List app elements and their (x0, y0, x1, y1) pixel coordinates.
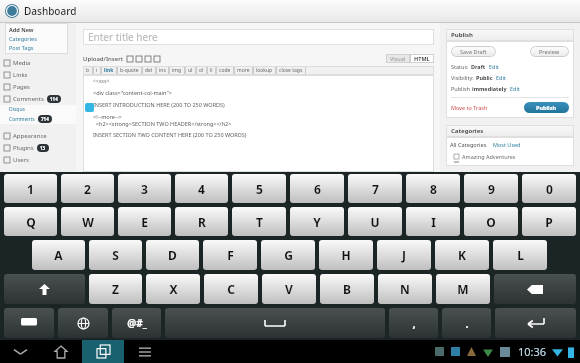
button[interactable]: Edit (510, 85, 520, 92)
button[interactable]: Menu (124, 340, 166, 363)
button[interactable]: Comments (0, 93, 76, 105)
button[interactable]: HTML (410, 54, 434, 63)
button[interactable]: Disqus (9, 105, 25, 114)
button[interactable]: Edit (489, 63, 499, 70)
staticText: 8 (430, 181, 437, 197)
button[interactable]: T (232, 207, 286, 236)
button[interactable]: li (207, 66, 216, 75)
button[interactable]: R (175, 207, 228, 236)
button[interactable]: 5 (232, 174, 286, 203)
button[interactable]: H (319, 240, 373, 270)
button[interactable]: 3 (118, 174, 171, 203)
button[interactable]: 7 (348, 174, 402, 203)
button[interactable]: Q (4, 207, 57, 236)
button[interactable]: Insert media (127, 56, 133, 62)
button[interactable]: B (320, 274, 374, 304)
button[interactable]: M (436, 274, 490, 304)
button[interactable]: Conspiracy Theories (450, 160, 570, 162)
staticText: U (370, 214, 380, 230)
button[interactable]: Move to Trash (451, 104, 488, 111)
button[interactable]: C (204, 274, 258, 304)
button[interactable]: Comments (9, 114, 52, 124)
button[interactable]: S (89, 240, 142, 270)
button[interactable]: Hide keyboard (0, 340, 40, 363)
button[interactable]: Most Used (493, 141, 521, 148)
staticText: M (457, 281, 469, 297)
button[interactable]: Backspace (494, 274, 576, 304)
button[interactable]: 4 (175, 174, 228, 203)
button[interactable]: D (146, 240, 199, 270)
button[interactable]: Recent apps (82, 340, 124, 363)
button[interactable]: E (118, 207, 171, 236)
button[interactable]: 8 (406, 174, 460, 203)
button[interactable]: Appearance (0, 130, 76, 142)
button[interactable]: link (101, 66, 117, 75)
button[interactable]: i (93, 66, 101, 75)
button[interactable]: J (377, 240, 431, 270)
button[interactable]: Publish (524, 102, 569, 113)
button[interactable]: Insert media (154, 56, 160, 62)
button[interactable]: more (234, 66, 253, 75)
button[interactable]: Insert media (145, 56, 151, 62)
button[interactable]: 6 (290, 174, 344, 203)
button[interactable]: All Categories (450, 141, 487, 148)
button[interactable]: G (261, 240, 315, 270)
button[interactable]: Z (89, 274, 142, 304)
staticText: del (145, 67, 153, 74)
button[interactable]: Insert media (136, 56, 142, 62)
button[interactable]: ins (156, 66, 169, 75)
button[interactable]: ul (185, 66, 196, 75)
button[interactable]: Space (165, 308, 385, 338)
button[interactable]: K (435, 240, 489, 270)
button[interactable]: Pages (0, 81, 76, 93)
button[interactable]: P (522, 207, 576, 236)
button[interactable]: 1 (4, 174, 57, 203)
button[interactable]: del (142, 66, 156, 75)
button[interactable]: L (493, 240, 547, 270)
button[interactable]: Period (442, 308, 491, 338)
button[interactable]: Post Tags (9, 43, 34, 52)
button[interactable]: F (203, 240, 257, 270)
button[interactable]: b-quote (117, 66, 142, 75)
button[interactable]: Plugins (0, 142, 76, 154)
button[interactable]: Y (290, 207, 344, 236)
staticText: B (343, 281, 351, 297)
button[interactable]: Enter (495, 308, 576, 338)
button[interactable]: code (216, 66, 234, 75)
button[interactable]: Users (0, 154, 76, 166)
button[interactable]: Links (0, 69, 76, 81)
button[interactable]: I (406, 207, 460, 236)
button[interactable]: Shift (4, 274, 85, 304)
button[interactable]: 9 (464, 174, 518, 203)
button[interactable]: Categories (9, 34, 37, 43)
button[interactable]: Symbols (112, 308, 161, 338)
button[interactable]: img (169, 66, 185, 75)
button[interactable]: Language (58, 308, 108, 338)
button[interactable]: Amazing Adventures (450, 151, 570, 160)
button[interactable]: Enter title here (83, 29, 434, 45)
button[interactable]: Visual (386, 54, 410, 63)
button[interactable]: Hide keyboard (4, 308, 54, 338)
button[interactable]: Comma (389, 308, 438, 338)
button[interactable]: b (83, 66, 93, 75)
button[interactable]: Preview (530, 46, 569, 57)
button[interactable]: 0 (522, 174, 576, 203)
button[interactable]: X (146, 274, 200, 304)
button[interactable]: U (348, 207, 402, 236)
button[interactable]: close tags (276, 66, 306, 75)
button[interactable]: W (61, 207, 114, 236)
staticText: 10:36 (518, 344, 547, 359)
button[interactable]: lookup (253, 66, 276, 75)
button[interactable]: Media (0, 57, 76, 69)
button[interactable]: ol (196, 66, 207, 75)
button[interactable]: Edit (496, 74, 506, 81)
button[interactable]: A (32, 240, 85, 270)
button[interactable]: N (378, 274, 432, 304)
button[interactable]: Add New (9, 25, 34, 34)
button[interactable]: Home (40, 340, 82, 363)
button[interactable]: Save Draft (451, 46, 496, 57)
button[interactable]: V (262, 274, 316, 304)
button[interactable]: O (464, 207, 518, 236)
staticText: 114 (50, 96, 58, 102)
button[interactable]: 2 (61, 174, 114, 203)
